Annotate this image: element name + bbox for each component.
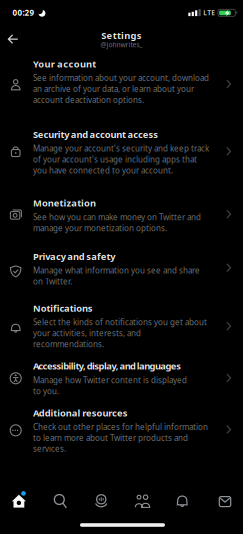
- staticText: LTE: [203, 8, 215, 17]
- button[interactable]: Your account: [0, 58, 243, 105]
- staticText: Privacy and safety: [33, 250, 115, 262]
- staticText: Manage how Twitter content is displayed …: [33, 375, 187, 396]
- button[interactable]: Monetization: [0, 197, 243, 233]
- staticText: Your account: [33, 58, 96, 70]
- button[interactable]: Notifications: [162, 486, 202, 516]
- staticText: Manage what information you see and shar…: [33, 265, 200, 287]
- staticText: Security and account access: [33, 128, 158, 141]
- staticText: @johnwrites_: [100, 40, 142, 49]
- staticText: Select the kinds of notifications you ge…: [33, 317, 207, 349]
- staticText: See information about your account, down…: [33, 73, 209, 105]
- staticText: Additional resources: [33, 407, 128, 419]
- staticText: Manage your account's security and keep …: [33, 143, 209, 176]
- button[interactable]: Spaces: [81, 486, 121, 516]
- button[interactable]: Back: [4, 31, 23, 48]
- button[interactable]: Security and account access: [0, 128, 243, 176]
- staticText: Notifications: [33, 302, 93, 314]
- button[interactable]: Home: [0, 486, 40, 516]
- staticText: Monetization: [33, 197, 96, 209]
- staticText: See how you can make money on Twitter an…: [33, 212, 201, 233]
- staticText: Check out other places for helpful infor…: [33, 422, 208, 454]
- button[interactable]: Communities: [121, 486, 162, 516]
- staticText: Accessibility, display, and languages: [33, 360, 181, 372]
- staticText: Settings: [101, 29, 142, 42]
- button[interactable]: Notifications: [0, 302, 243, 349]
- staticText: 00:29: [13, 7, 35, 18]
- button[interactable]: Privacy and safety: [0, 250, 243, 287]
- button[interactable]: Accessibility, display, and languages: [0, 360, 243, 396]
- button[interactable]: Messages: [202, 486, 243, 516]
- button[interactable]: Additional resources: [0, 407, 243, 454]
- button[interactable]: Search: [40, 486, 81, 516]
